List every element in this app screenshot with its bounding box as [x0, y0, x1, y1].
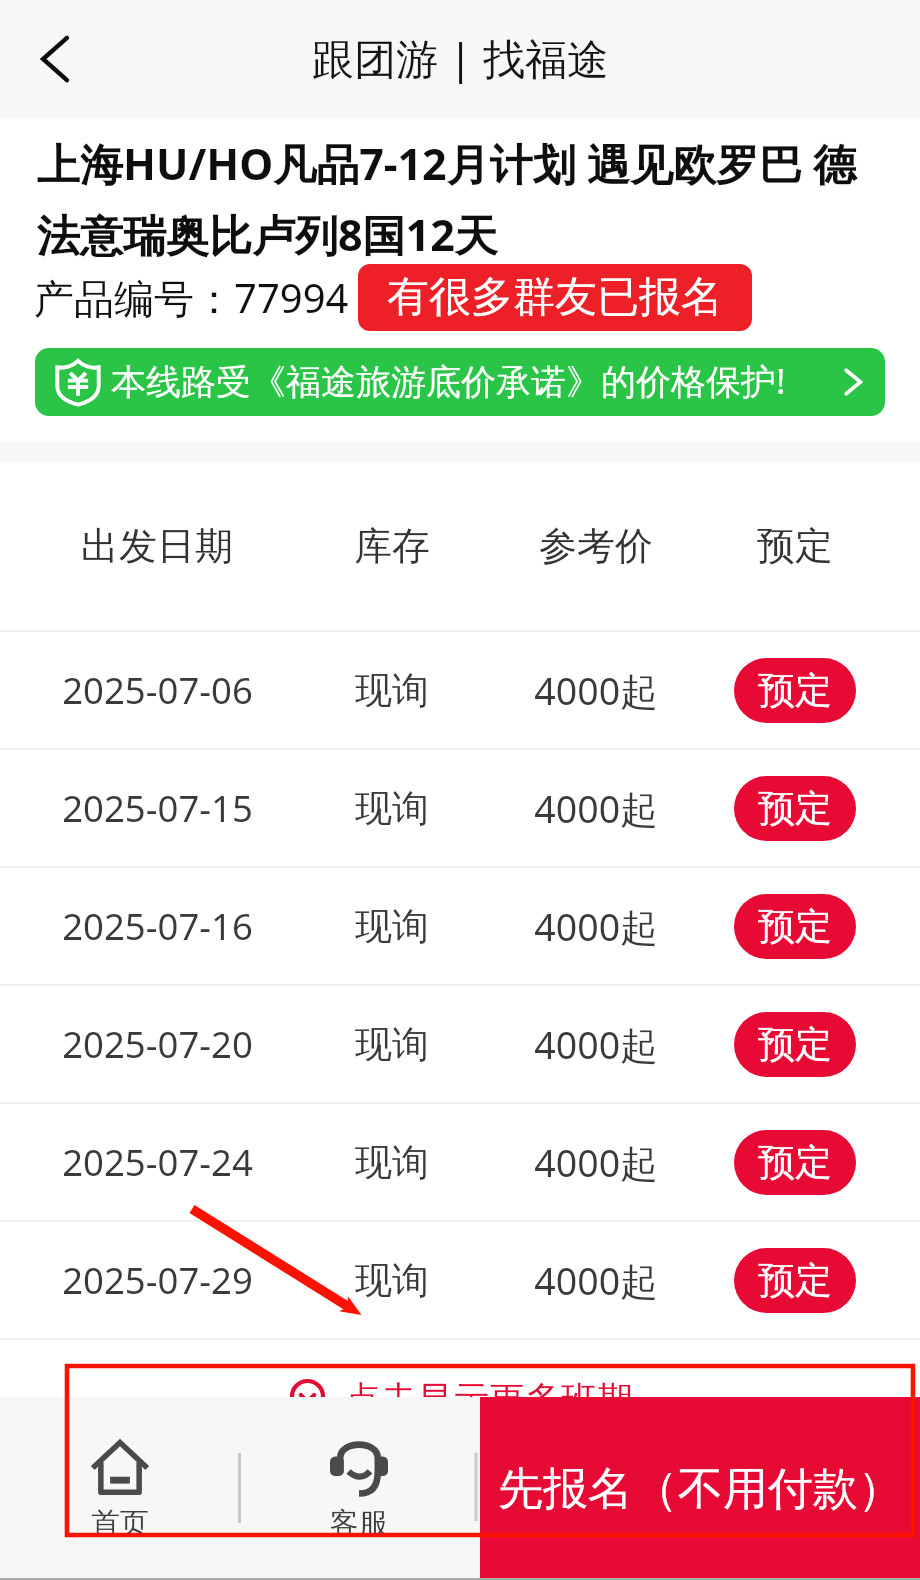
staticText: 预定 [758, 903, 832, 950]
staticText: 2025-07-15 [62, 783, 253, 833]
staticText: 预定 [758, 667, 832, 714]
staticText: 预定 [758, 785, 832, 832]
staticText: 4000起 [534, 1137, 658, 1188]
staticText: 现询 [355, 785, 429, 832]
staticText: 预定 [758, 1257, 832, 1304]
staticText: 2025-07-06 [62, 665, 253, 715]
staticText: 预定 [758, 1021, 832, 1068]
staticText: 上海HU/HO凡品7-12月计划 遇见欧罗巴 德法意瑞奥比卢列8国12天 [37, 134, 899, 264]
button[interactable]: 预定 [734, 894, 856, 959]
staticText: 先报名（不用付款） [498, 1461, 903, 1518]
staticText: 客服 [330, 1505, 388, 1542]
staticText: 现询 [355, 1139, 429, 1186]
staticText: 出发日期 [81, 522, 233, 570]
button[interactable]: Back [24, 28, 86, 90]
staticText: 4000起 [534, 1255, 658, 1306]
staticText: 有很多群友已报名 [387, 271, 723, 324]
button[interactable]: 先报名（不用付款） [480, 1397, 920, 1580]
staticText: 2025-07-16 [62, 901, 253, 951]
staticText: 2025-07-20 [62, 1019, 253, 1069]
staticText: 4000起 [534, 901, 658, 952]
staticText: 现询 [355, 1257, 429, 1304]
staticText: 2025-07-24 [62, 1137, 253, 1187]
button[interactable]: 预定 [734, 1248, 856, 1313]
staticText: 跟团游 | 找福途 [312, 29, 609, 86]
staticText: 现询 [355, 667, 429, 714]
staticText: 2025-07-29 [62, 1255, 253, 1305]
button[interactable]: 首页 [0, 1397, 239, 1580]
staticText: 点击显示更多班期 [345, 1377, 633, 1422]
staticText: 预定 [758, 1139, 832, 1186]
staticText: 现询 [355, 903, 429, 950]
staticText: 现询 [355, 1021, 429, 1068]
staticText: 首页 [91, 1505, 149, 1542]
button[interactable]: 有很多群友已报名 [358, 264, 752, 331]
staticText: 4000起 [534, 1019, 658, 1070]
staticText: 产品编号：77994 [34, 270, 349, 325]
staticText: 本线路受《福途旅游底价承诺》的价格保护! [111, 357, 786, 405]
button[interactable]: 预定 [734, 658, 856, 723]
staticText: 4000起 [534, 665, 658, 716]
button[interactable]: 本线路受《福途旅游底价承诺》的价格保护! [35, 348, 885, 416]
button[interactable]: 点击显示更多班期 [0, 1340, 920, 1430]
staticText: 预定 [757, 522, 833, 570]
button[interactable]: 客服 [239, 1397, 478, 1580]
staticText: 4000起 [534, 783, 658, 834]
button[interactable]: 预定 [734, 776, 856, 841]
staticText: 库存 [354, 522, 430, 570]
staticText: 参考价 [539, 522, 653, 570]
button[interactable]: 预定 [734, 1012, 856, 1077]
button[interactable]: 预定 [734, 1130, 856, 1195]
